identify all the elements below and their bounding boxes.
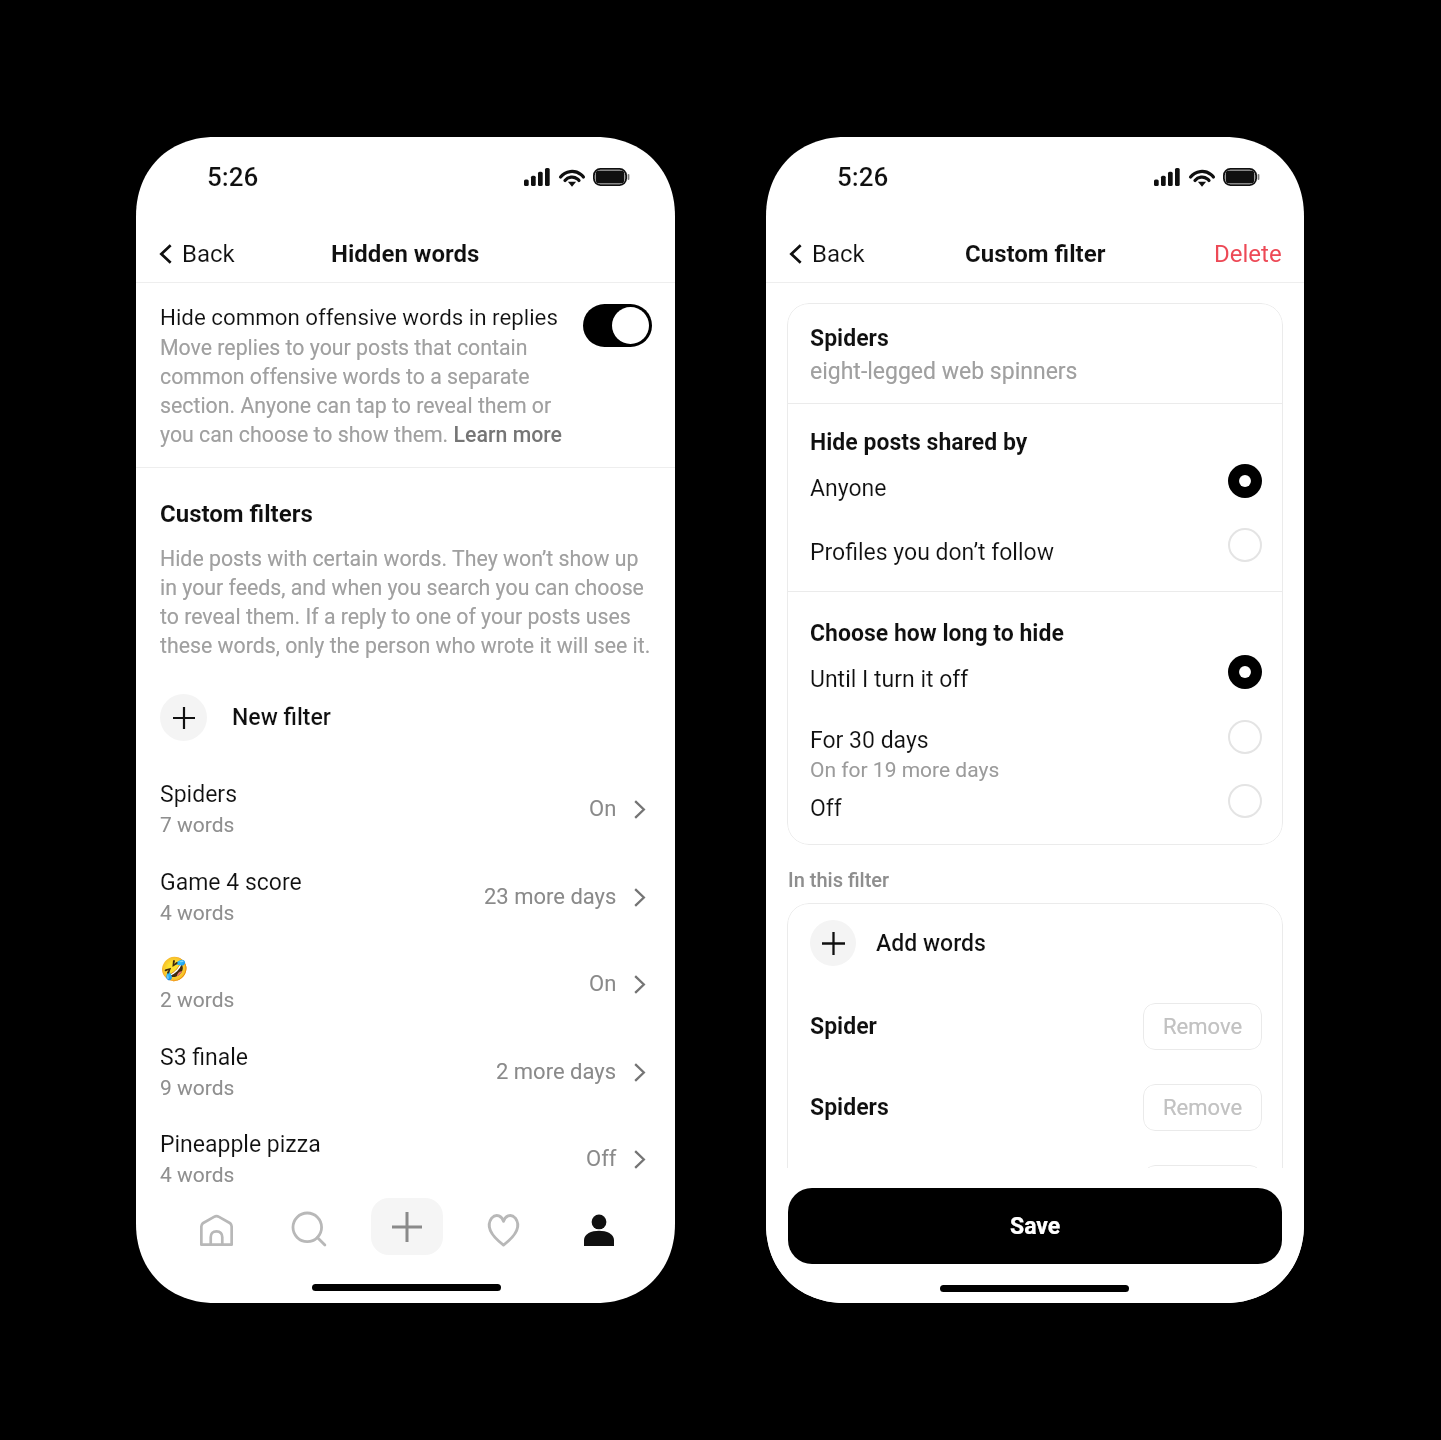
button[interactable]: Anyone — [787, 468, 1283, 512]
staticText: 5:26 — [837, 162, 889, 192]
staticText: 5:26 — [207, 162, 259, 192]
staticText: Game 4 score — [160, 869, 302, 896]
staticText: Custom filter — [965, 240, 1106, 268]
button[interactable]: Hide offensive words toggle — [583, 304, 652, 347]
staticText: 9 words — [160, 1076, 235, 1101]
button[interactable]: Add words — [787, 920, 1283, 966]
button[interactable]: S3 finale — [136, 1028, 675, 1116]
button[interactable]: Delete — [1205, 234, 1291, 274]
staticText: Spider — [810, 1013, 877, 1040]
button[interactable]: Save — [788, 1188, 1282, 1264]
staticText: Anyone — [810, 475, 887, 502]
staticText: Spiders — [810, 1094, 889, 1121]
staticText: Hide common offensive words in replies — [160, 304, 558, 330]
staticText: On for 19 more days — [810, 758, 1000, 783]
staticText: Until I turn it off — [810, 666, 969, 693]
staticText: 23 more days — [484, 884, 617, 910]
staticText: Move replies to your posts that contain … — [160, 335, 565, 447]
staticText: Back — [812, 240, 865, 268]
button[interactable]: Search — [276, 1196, 344, 1264]
staticText: Hidden words — [331, 240, 480, 268]
button[interactable]: Activity — [469, 1196, 537, 1264]
staticText: 7 words — [160, 813, 235, 838]
staticText: Hide posts with certain words. They won’… — [160, 546, 653, 658]
staticText: Spiders — [810, 325, 889, 352]
staticText: Remove — [1163, 1176, 1243, 1202]
staticText: eight-legged web spinners — [810, 358, 1078, 385]
staticText: Add words — [876, 930, 986, 957]
staticText: Spiders — [160, 781, 237, 808]
button[interactable]: Back — [782, 232, 875, 276]
staticText: Custom filters — [160, 500, 313, 528]
staticText: For 30 days — [810, 727, 929, 754]
button[interactable]: Profile — [565, 1196, 633, 1264]
button[interactable]: New filter — [136, 693, 675, 741]
staticText: 2 more days — [496, 1059, 617, 1085]
button[interactable]: Home — [182, 1196, 250, 1264]
button[interactable]: Pineapple pizza — [136, 1115, 675, 1203]
staticText: 4 words — [160, 901, 235, 926]
staticText: On — [589, 796, 617, 822]
button[interactable]: Profiles you don’t follow — [787, 532, 1283, 576]
button[interactable]: Spiders — [136, 765, 675, 853]
staticText: S3 finale — [160, 1044, 249, 1071]
staticText: 4 words — [160, 1163, 235, 1188]
button[interactable]: Back — [152, 232, 245, 276]
button[interactable]: Hide common offensive words in replies — [136, 283, 675, 426]
staticText: Save — [1010, 1213, 1061, 1240]
button[interactable]: Game 4 score — [136, 853, 675, 941]
staticText: Back — [182, 240, 235, 268]
button[interactable]: For 30 days — [787, 720, 1283, 782]
staticText: Off — [586, 1146, 617, 1172]
staticText: Remove — [1163, 1014, 1243, 1040]
button[interactable]: Remove — [1143, 1003, 1262, 1050]
button[interactable]: Off — [787, 788, 1283, 832]
button[interactable]: Remove — [1143, 1165, 1262, 1203]
staticText: On — [589, 971, 617, 997]
staticText: Off — [810, 795, 842, 822]
staticText: Choose how long to hide — [810, 620, 1064, 647]
button[interactable]: Create — [371, 1198, 443, 1255]
button[interactable]: Until I turn it off — [787, 659, 1283, 703]
staticText: Pineapple pizza — [160, 1131, 321, 1158]
staticText: Web — [810, 1175, 856, 1202]
staticText: In this filter — [788, 868, 890, 891]
staticText: Remove — [1163, 1095, 1243, 1121]
staticText: 🤣 — [160, 956, 189, 983]
button[interactable]: 🤣 — [136, 940, 675, 1028]
staticText: Profiles you don’t follow — [810, 539, 1054, 566]
button[interactable]: Remove — [1143, 1084, 1262, 1131]
staticText: Hide posts shared by — [810, 429, 1028, 456]
staticText: New filter — [232, 704, 331, 731]
staticText: 2 words — [160, 988, 235, 1013]
